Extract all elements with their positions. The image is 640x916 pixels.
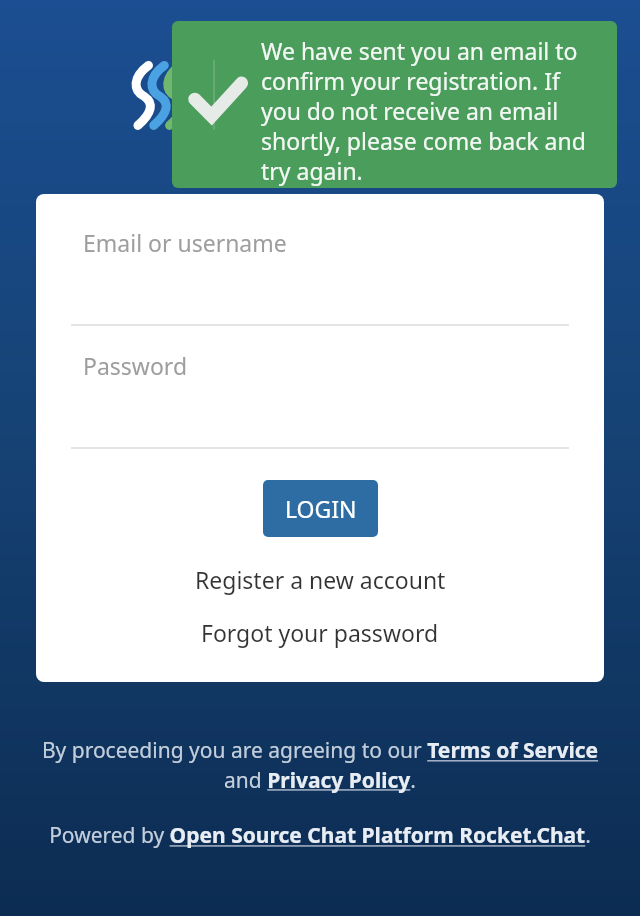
button[interactable]: Forgot your password xyxy=(36,612,604,652)
staticText: LOGIN xyxy=(285,493,357,524)
staticText: powered by rocket.chat xyxy=(202,108,334,124)
staticText: Forgot your password xyxy=(201,617,439,648)
button[interactable]: Powered by Open Source Chat Platform Roc… xyxy=(40,821,600,850)
other: Steemit logo xyxy=(130,55,196,135)
button[interactable]: By proceeding you are agreeing to our Te… xyxy=(40,736,600,794)
staticText: STEEMIT.CHAT xyxy=(202,73,407,108)
button[interactable]: We have sent you an email to confirm you… xyxy=(172,21,617,188)
button[interactable]: Register a new account xyxy=(36,559,604,599)
button[interactable]: Email or username xyxy=(83,227,287,258)
staticText: We have sent you an email to confirm you… xyxy=(261,35,605,186)
button[interactable]: LOGIN xyxy=(263,480,378,537)
button[interactable]: Password xyxy=(83,350,188,381)
staticText: Register a new account xyxy=(195,564,446,595)
